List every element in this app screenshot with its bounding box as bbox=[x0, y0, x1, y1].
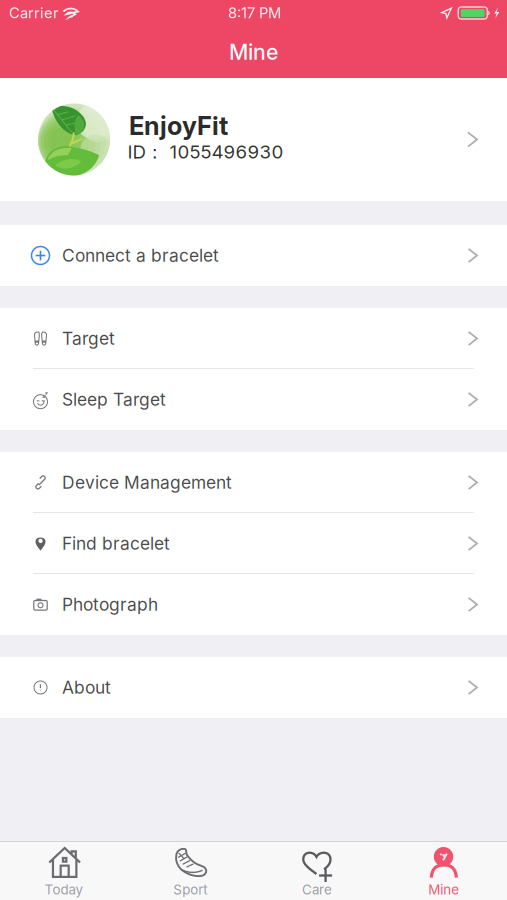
staticText: Carrier bbox=[9, 4, 59, 22]
staticText: Care bbox=[302, 881, 332, 898]
button[interactable]: Device Management bbox=[0, 452, 507, 513]
staticText: Photograph bbox=[62, 594, 158, 615]
staticText: Connect a bracelet bbox=[62, 245, 219, 266]
staticText: Sleep Target bbox=[62, 389, 166, 410]
staticText: EnjoyFit bbox=[129, 110, 228, 141]
staticText: About bbox=[62, 677, 111, 698]
staticText: Find bracelet bbox=[62, 533, 170, 554]
button[interactable]: Mine bbox=[380, 841, 507, 900]
staticText: Today bbox=[44, 881, 82, 898]
staticText: Target bbox=[62, 328, 115, 349]
button[interactable]: Connect a bracelet bbox=[0, 225, 507, 286]
staticText: Mine bbox=[229, 39, 278, 65]
button[interactable]: Photograph bbox=[0, 574, 507, 635]
staticText: Device Management bbox=[62, 472, 232, 493]
button[interactable]: Find bracelet bbox=[0, 513, 507, 574]
button[interactable]: Today bbox=[0, 841, 127, 900]
button[interactable]: Care bbox=[253, 841, 380, 900]
staticText: Sport bbox=[173, 881, 207, 898]
button[interactable]: About bbox=[0, 657, 507, 718]
button[interactable]: Sleep Target bbox=[0, 369, 507, 430]
button[interactable]: Sport bbox=[127, 841, 254, 900]
staticText: Mine bbox=[428, 881, 459, 898]
button[interactable]: Target bbox=[0, 308, 507, 369]
button[interactable]: EnjoyFit bbox=[0, 78, 507, 201]
staticText: ID： 1055496930 bbox=[127, 140, 283, 164]
staticText: 8:17 PM bbox=[228, 4, 281, 22]
